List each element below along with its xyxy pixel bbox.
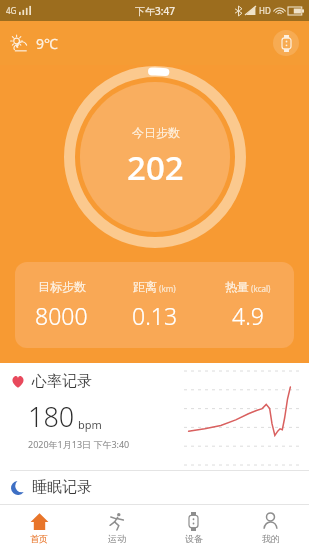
staticText: HD <box>259 5 271 16</box>
staticText: 180 <box>28 398 75 435</box>
staticText: 首页 <box>30 533 48 544</box>
staticText: 距离 <box>133 279 157 294</box>
button[interactable]: 睡眠记录 <box>0 471 309 504</box>
button[interactable]: 我的 <box>232 505 309 550</box>
staticText: 设备 <box>185 533 203 544</box>
staticText: 2020年1月13日 下午3:40 <box>28 438 130 450</box>
button[interactable]: 设备 <box>155 505 232 550</box>
button[interactable]: 运动 <box>78 505 155 550</box>
staticText: 我的 <box>262 533 280 544</box>
staticText: 今日步数 <box>132 125 180 140</box>
staticText: 0.13 <box>132 300 178 331</box>
button[interactable]: 心率记录 <box>0 363 309 471</box>
staticText: 202 <box>127 145 184 190</box>
staticText: 下午3:47 <box>135 4 175 18</box>
button[interactable]: 9℃ <box>10 34 58 53</box>
staticText: 热量 <box>225 279 249 294</box>
staticText: 9℃ <box>36 34 58 53</box>
staticText: 睡眠记录 <box>32 478 92 497</box>
button[interactable]: 首页 <box>0 505 78 550</box>
staticText: bpm <box>78 417 102 432</box>
staticText: 4G <box>6 5 17 16</box>
staticText: (km) <box>159 283 176 294</box>
staticText: 8000 <box>35 300 88 331</box>
staticText: 心率记录 <box>32 372 92 391</box>
staticText: 4.9 <box>232 300 264 331</box>
staticText: 目标步数 <box>38 279 86 294</box>
button[interactable]: 我的设备 <box>273 30 299 56</box>
button[interactable]: 目标步数 <box>15 262 294 348</box>
staticText: (kcal) <box>251 283 271 294</box>
staticText: 运动 <box>108 533 126 544</box>
button[interactable]: 今日步数 <box>62 64 248 250</box>
